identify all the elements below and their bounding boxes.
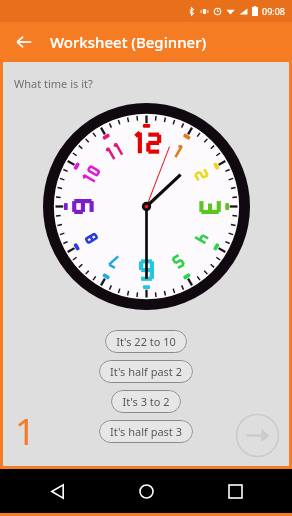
button[interactable]: It's half past 3 (99, 420, 193, 443)
button[interactable]: It's 22 to 10 (105, 330, 187, 353)
staticText: It's half past 3 (110, 424, 182, 439)
button[interactable]: It's 3 to 2 (111, 390, 181, 413)
button[interactable]: Back (40, 474, 74, 508)
staticText: Worksheet (Beginner) (50, 32, 207, 52)
staticText: 09:08 (262, 5, 286, 17)
button[interactable]: Next (235, 413, 280, 458)
button[interactable]: It's half past 2 (99, 360, 193, 383)
button[interactable]: Back (8, 26, 40, 58)
staticText: It's half past 2 (110, 364, 182, 379)
staticText: It's 3 to 2 (122, 394, 170, 409)
button[interactable]: Home (129, 474, 163, 508)
staticText: 1 (15, 407, 36, 456)
staticText: What time is it? (14, 76, 93, 91)
staticText: It's 22 to 10 (116, 334, 176, 349)
button[interactable]: Recent apps (218, 474, 252, 508)
